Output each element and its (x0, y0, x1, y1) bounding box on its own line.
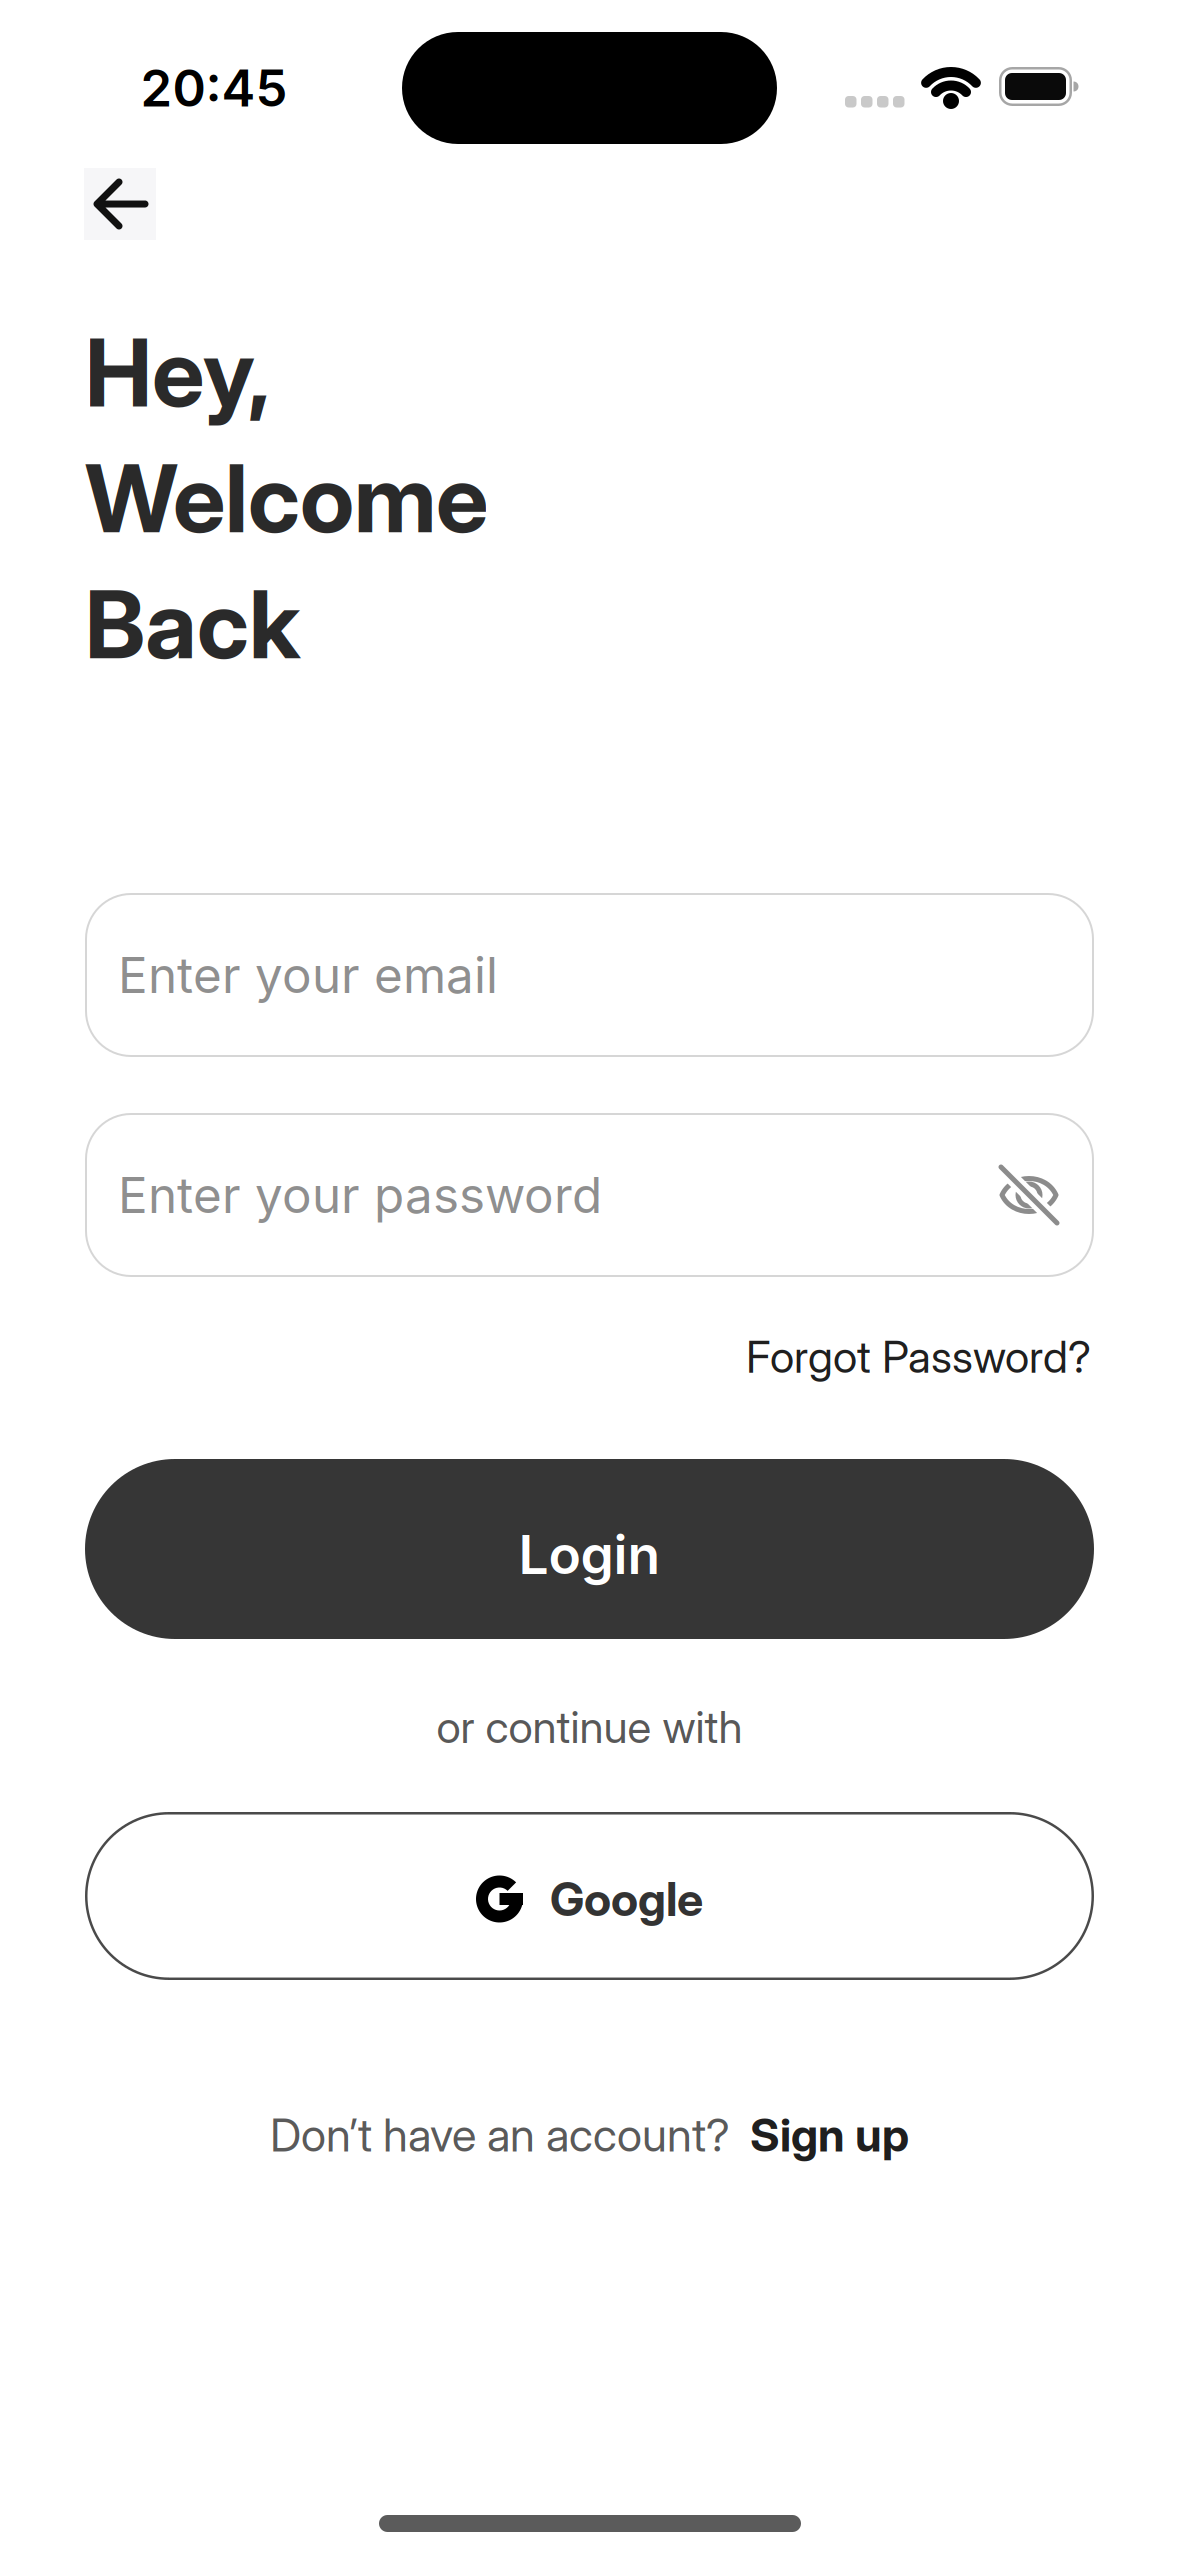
staticText: or continue with (436, 1700, 742, 1754)
button[interactable]: Show password (998, 1164, 1060, 1226)
button[interactable]: Back (84, 168, 156, 240)
staticText: Enter your password (118, 1165, 602, 1225)
staticText: Welcome (85, 442, 488, 555)
button[interactable]: Sign up (750, 2108, 909, 2162)
button[interactable]: Login (85, 1459, 1094, 1639)
staticText: Enter your email (118, 945, 498, 1005)
staticText: Back (85, 568, 300, 681)
staticText: Google (550, 1871, 703, 1927)
staticText: Sign up (750, 2108, 909, 2162)
staticText: Login (518, 1522, 660, 1587)
staticText: Hey, (85, 316, 271, 429)
staticText: 20:45 (140, 57, 287, 119)
textField[interactable]: Enter your email (85, 893, 1094, 1057)
textField[interactable]: Enter your password (85, 1113, 1094, 1277)
button[interactable]: Google (85, 1812, 1094, 1980)
button[interactable]: Forgot Password? (746, 1330, 1091, 1383)
staticText: Forgot Password? (746, 1330, 1091, 1383)
staticText: Don’t have an account? (270, 2108, 730, 2162)
